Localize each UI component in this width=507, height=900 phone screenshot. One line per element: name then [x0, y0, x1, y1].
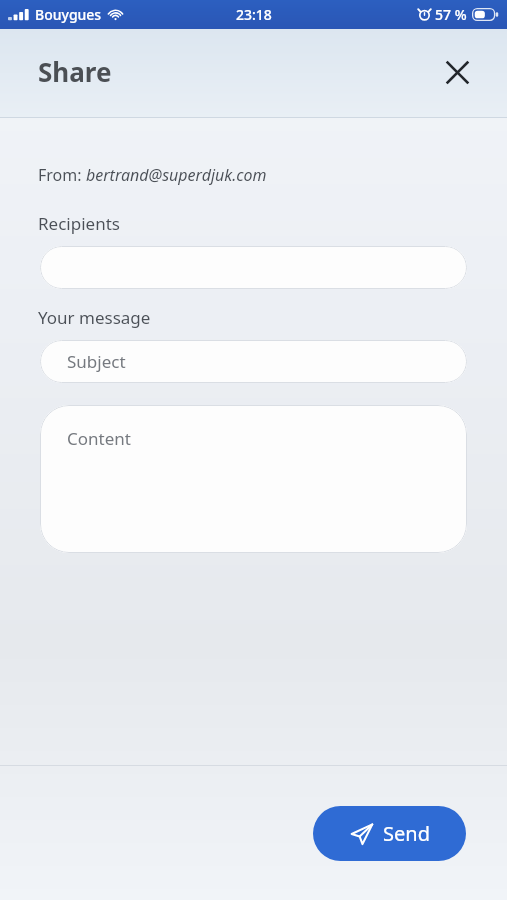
staticText: 57 %: [435, 5, 467, 24]
staticText: Send: [383, 820, 430, 847]
staticText: 23:18: [236, 5, 272, 24]
staticText: From:: [38, 164, 86, 186]
staticText: Subject: [67, 350, 126, 373]
button[interactable]: Send: [313, 806, 466, 861]
staticText: bertrand@superdjuk.com: [86, 164, 267, 186]
button[interactable]: Subject: [40, 340, 467, 383]
staticText: Share: [38, 54, 112, 89]
staticText: Content: [67, 427, 131, 450]
button[interactable]: Content: [40, 405, 467, 553]
button[interactable]: [40, 246, 467, 289]
staticText: Your message: [38, 306, 151, 329]
button[interactable]: Close: [435, 50, 479, 94]
staticText: Recipients: [38, 212, 120, 235]
staticText: Bouygues: [35, 5, 102, 24]
